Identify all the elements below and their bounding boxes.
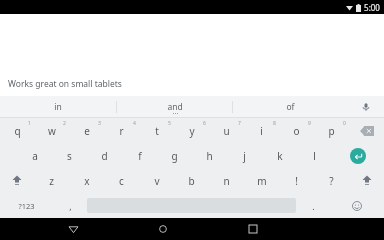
button[interactable]: Backspace — [349, 118, 384, 143]
staticText: b — [188, 174, 195, 188]
button[interactable]: p — [314, 118, 349, 143]
staticText: u — [223, 124, 230, 138]
button[interactable]: of — [233, 96, 348, 118]
button[interactable]: q — [0, 118, 34, 143]
staticText: d — [101, 149, 108, 163]
button[interactable]: a — [17, 143, 52, 168]
staticText: 3 — [98, 120, 101, 127]
staticText: i — [260, 124, 263, 138]
button[interactable]: r — [104, 118, 139, 143]
staticText: g — [171, 149, 178, 163]
button[interactable]: z — [34, 168, 69, 193]
staticText: 5:00 — [364, 2, 380, 13]
button[interactable]: Emoji — [330, 193, 384, 218]
staticText: f — [138, 149, 142, 163]
staticText: n — [223, 174, 230, 188]
button[interactable]: o — [279, 118, 314, 143]
button[interactable]: l — [297, 143, 332, 168]
button[interactable]: i — [244, 118, 279, 143]
staticText: c — [119, 174, 124, 188]
button[interactable]: ?123 — [0, 193, 53, 218]
button[interactable]: Home — [147, 218, 179, 240]
staticText: 0 — [343, 120, 346, 127]
button[interactable]: Shift — [349, 168, 384, 193]
button[interactable]: n — [209, 168, 244, 193]
button[interactable]: t — [139, 118, 174, 143]
staticText: e — [84, 124, 90, 138]
button[interactable]: Recents — [237, 218, 269, 240]
staticText: v — [154, 174, 160, 188]
staticText: Works great on small tablets — [8, 78, 122, 90]
staticText: w — [48, 124, 56, 138]
staticText: in — [54, 101, 62, 113]
button[interactable]: Voice input — [348, 96, 384, 118]
staticText: h — [206, 149, 213, 163]
staticText: z — [49, 174, 54, 188]
staticText: 4 — [133, 120, 136, 127]
button[interactable]: ? — [314, 168, 349, 193]
staticText: s — [67, 149, 72, 163]
staticText: m — [257, 174, 267, 188]
staticText: 9 — [308, 120, 311, 127]
button[interactable]: j — [227, 143, 262, 168]
staticText: q — [14, 124, 21, 138]
staticText: 5 — [168, 120, 171, 127]
button[interactable]: in — [0, 96, 116, 118]
button[interactable]: u — [209, 118, 244, 143]
button[interactable]: e — [69, 118, 104, 143]
button[interactable]: v — [139, 168, 174, 193]
button[interactable]: ! — [279, 168, 314, 193]
staticText: p — [328, 124, 335, 138]
button[interactable]: h — [192, 143, 227, 168]
staticText: t — [155, 124, 159, 138]
button[interactable]: c — [104, 168, 139, 193]
button[interactable]: Back — [57, 218, 89, 240]
button[interactable]: d — [87, 143, 122, 168]
button[interactable]: b — [174, 168, 209, 193]
staticText: ?123 — [18, 201, 35, 211]
button[interactable]: Shift — [0, 168, 34, 193]
button[interactable]: and — [117, 96, 232, 118]
button[interactable]: y — [174, 118, 209, 143]
staticText: j — [243, 149, 246, 163]
button[interactable]: m — [244, 168, 279, 193]
staticText: y — [189, 124, 195, 138]
staticText: 2 — [63, 120, 66, 127]
button[interactable]: w — [34, 118, 69, 143]
staticText: a — [32, 149, 38, 163]
staticText: o — [293, 124, 300, 138]
button[interactable]: g — [157, 143, 192, 168]
button[interactable]: f — [122, 143, 157, 168]
staticText: x — [84, 174, 90, 188]
staticText: 7 — [238, 120, 241, 127]
staticText: l — [313, 149, 316, 163]
staticText: 1 — [28, 120, 31, 127]
staticText: 8 — [273, 120, 276, 127]
button[interactable]: k — [262, 143, 297, 168]
staticText: and — [167, 101, 183, 113]
staticText: , — [69, 200, 72, 212]
button[interactable]: , — [53, 193, 87, 218]
button[interactable]: . — [296, 193, 330, 218]
staticText: ! — [295, 174, 298, 188]
staticText: k — [277, 149, 283, 163]
button[interactable]: Enter — [332, 143, 384, 168]
button[interactable]: s — [52, 143, 87, 168]
staticText: 6 — [203, 120, 206, 127]
staticText: of — [286, 101, 295, 113]
button[interactable]: x — [69, 168, 104, 193]
staticText: r — [119, 124, 124, 138]
staticText: . — [312, 200, 315, 212]
staticText: ? — [329, 174, 334, 188]
